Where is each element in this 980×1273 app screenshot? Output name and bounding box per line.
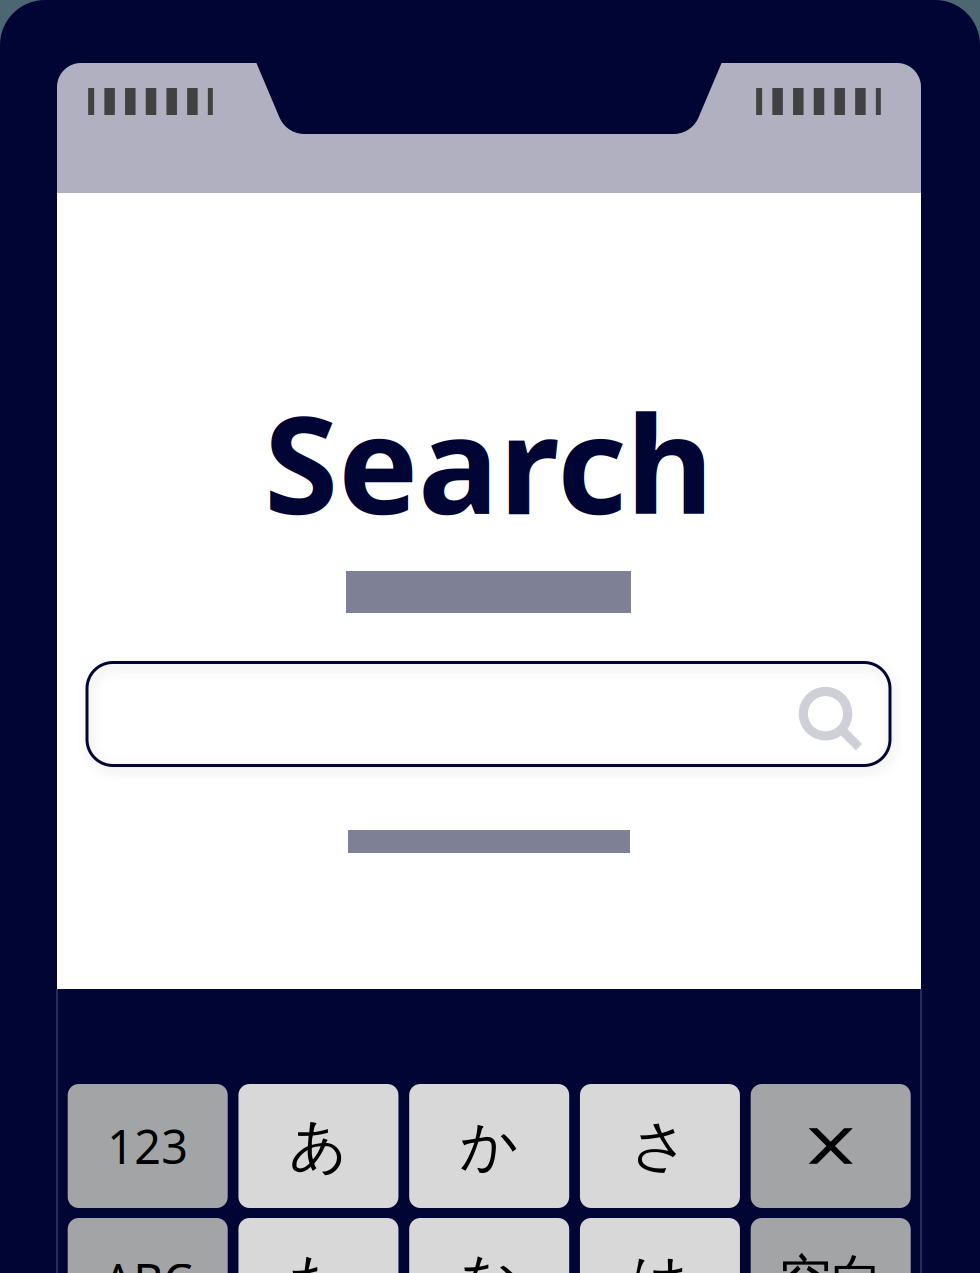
staticText: 空白 xyxy=(778,1247,884,1273)
button[interactable] xyxy=(751,1084,911,1208)
staticText: な xyxy=(460,1245,519,1273)
button[interactable]: な xyxy=(409,1218,569,1273)
button[interactable]: ABC xyxy=(68,1218,228,1273)
staticText: は xyxy=(630,1245,689,1273)
button[interactable]: あ xyxy=(238,1084,398,1208)
staticText: Search xyxy=(264,373,714,551)
button[interactable]: Search field xyxy=(87,666,890,769)
staticText: さ xyxy=(630,1111,689,1181)
button[interactable]: 123 xyxy=(68,1084,228,1208)
button[interactable]: さ xyxy=(580,1084,740,1208)
button[interactable]: 空白 xyxy=(751,1218,911,1273)
staticText: あ xyxy=(289,1111,348,1181)
staticText: 123 xyxy=(107,1115,188,1177)
staticText: か xyxy=(460,1111,519,1181)
button[interactable]: た xyxy=(238,1218,398,1273)
button[interactable]: か xyxy=(409,1084,569,1208)
button[interactable]: は xyxy=(580,1218,740,1273)
staticText: ABC xyxy=(103,1249,192,1273)
staticText: た xyxy=(289,1245,348,1273)
